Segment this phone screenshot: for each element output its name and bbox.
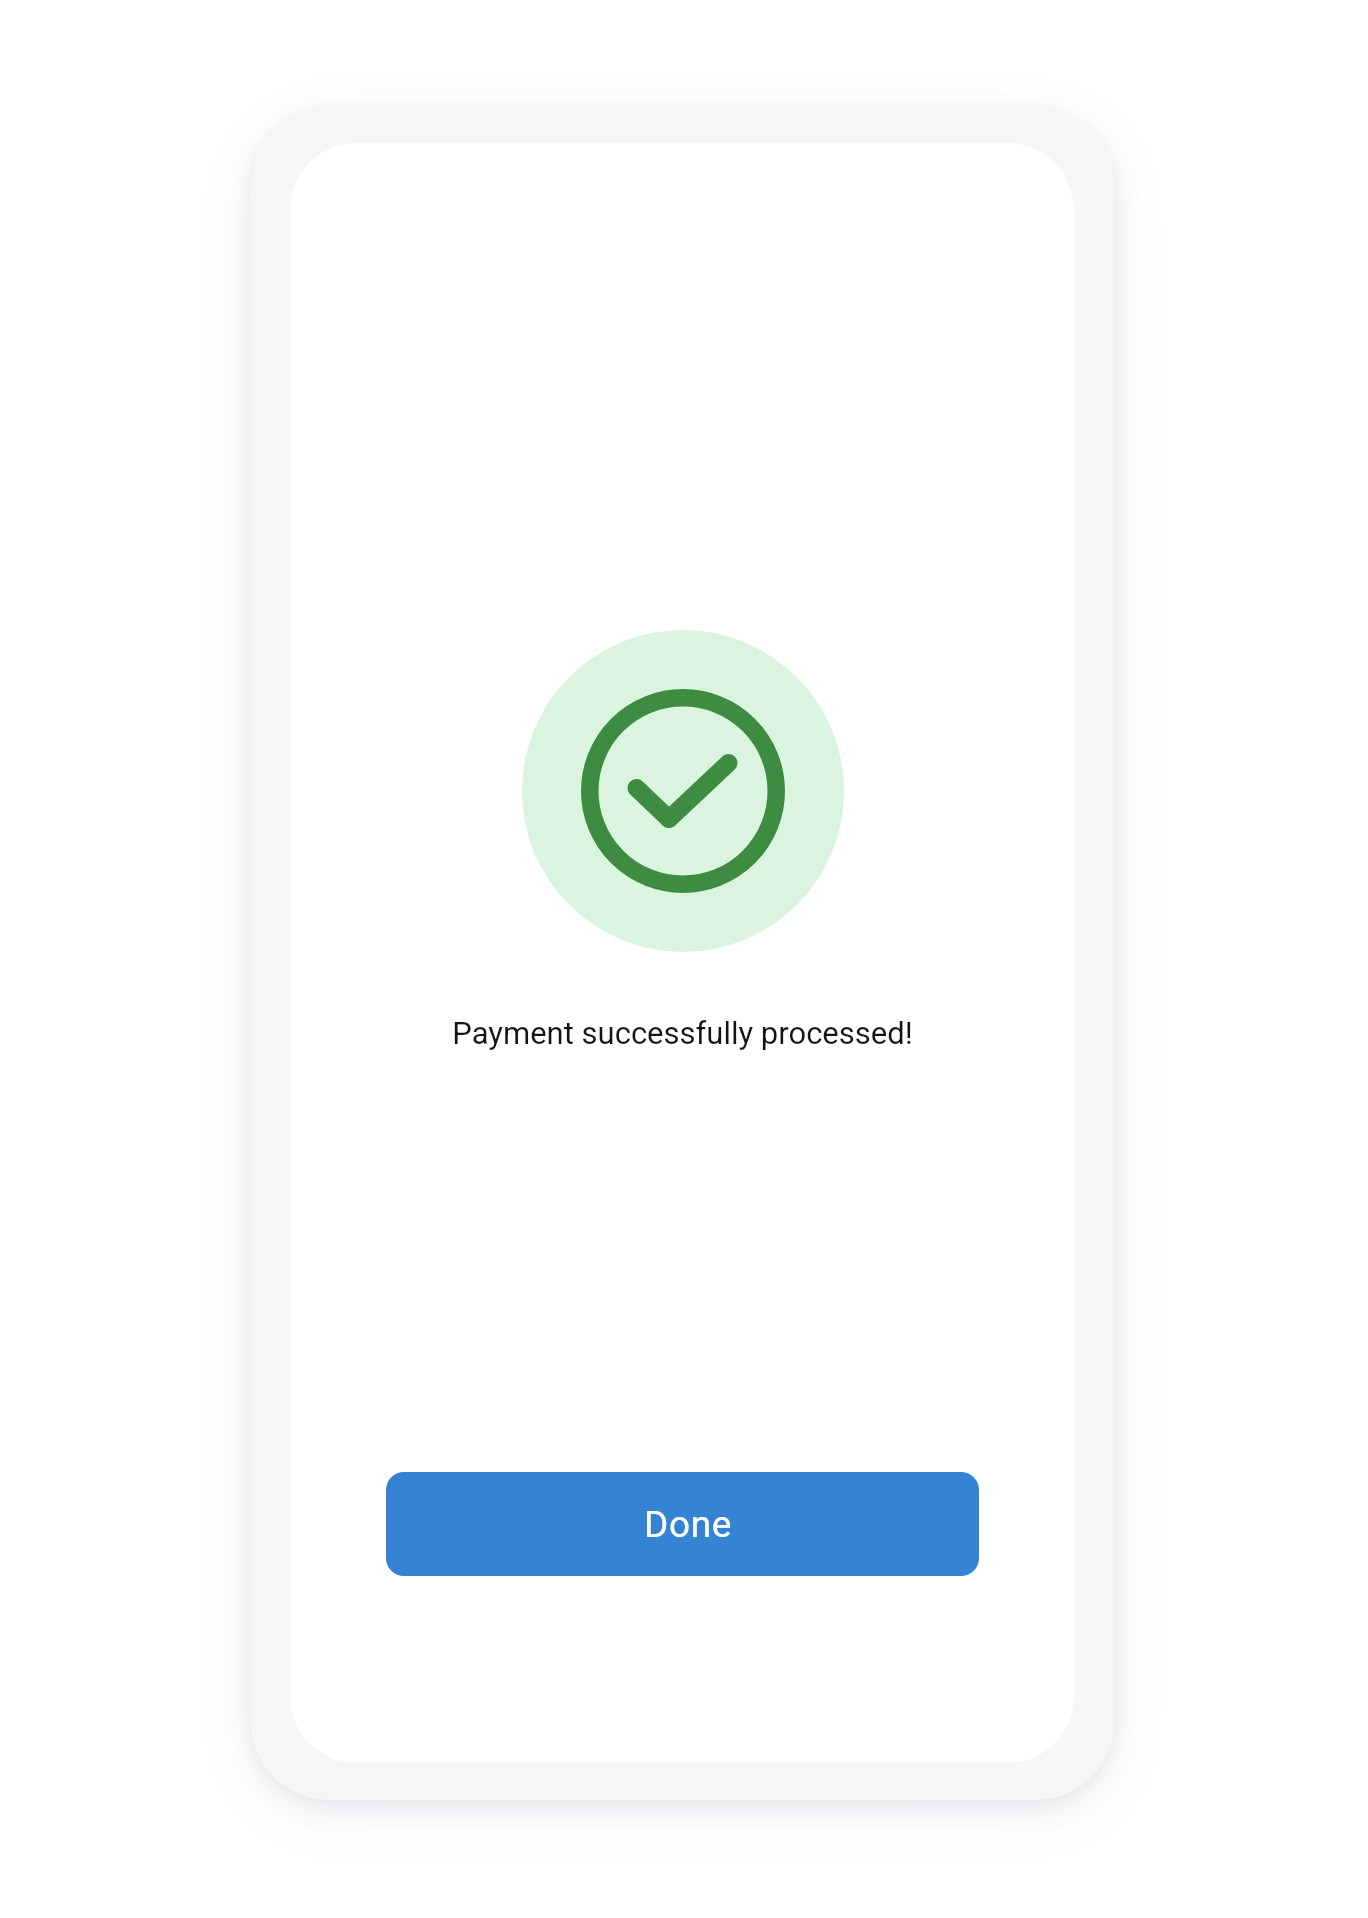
button[interactable]: Done — [386, 1472, 979, 1576]
staticText: Payment successfully processed! — [452, 1015, 913, 1051]
other: Payment successful — [522, 630, 844, 952]
staticText: Done — [644, 1503, 733, 1546]
